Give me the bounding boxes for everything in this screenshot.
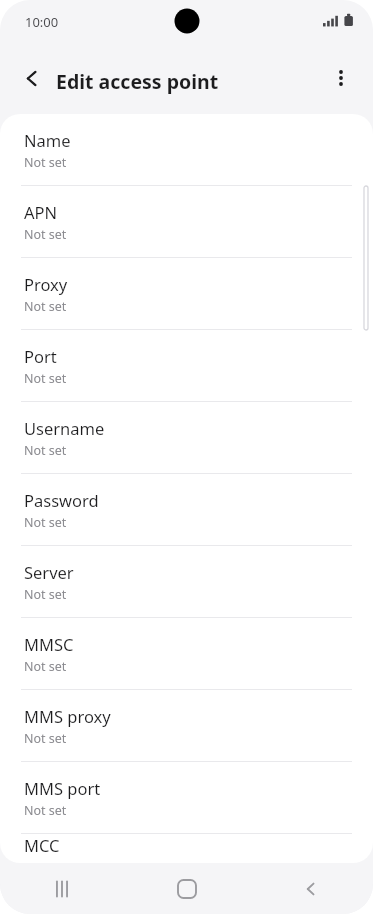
button[interactable]: Navigate up	[11, 57, 54, 100]
staticText: Not set	[24, 442, 67, 459]
staticText: MMS proxy	[24, 705, 111, 727]
button[interactable]: MMS proxy	[0, 690, 373, 762]
button[interactable]: More options	[320, 57, 361, 98]
staticText: Edit access point	[56, 68, 219, 95]
button[interactable]: MMSC	[0, 618, 373, 690]
staticText: Not set	[24, 658, 67, 675]
button[interactable]: Password	[0, 474, 373, 546]
button[interactable]: Server	[0, 546, 373, 618]
staticText: Not set	[24, 298, 67, 315]
staticText: 10:00	[25, 13, 59, 31]
staticText: Not set	[24, 154, 67, 171]
staticText: Server	[24, 561, 74, 583]
staticText: MMSC	[24, 633, 74, 655]
button[interactable]: MCC	[0, 834, 373, 863]
button[interactable]: Home	[124, 863, 249, 914]
staticText: Not set	[24, 586, 67, 603]
button[interactable]: Port	[0, 330, 373, 402]
staticText: Password	[24, 489, 99, 511]
staticText: MMS port	[24, 777, 101, 799]
button[interactable]: Recent apps	[0, 863, 124, 914]
staticText: APN	[24, 201, 58, 223]
staticText: Username	[24, 417, 105, 439]
button[interactable]: Name	[0, 114, 373, 186]
staticText: Not set	[24, 370, 67, 387]
staticText: Not set	[24, 730, 67, 747]
staticText: Not set	[24, 226, 67, 243]
button[interactable]: MMS port	[0, 762, 373, 834]
button[interactable]: Proxy	[0, 258, 373, 330]
staticText: Proxy	[24, 273, 68, 295]
button[interactable]: APN	[0, 186, 373, 258]
staticText: MCC	[24, 834, 60, 856]
button[interactable]: Back	[249, 863, 373, 914]
staticText: Not set	[24, 514, 67, 531]
staticText: Name	[24, 129, 71, 151]
staticText: Not set	[24, 802, 67, 819]
button[interactable]: Username	[0, 402, 373, 474]
staticText: Port	[24, 345, 57, 367]
